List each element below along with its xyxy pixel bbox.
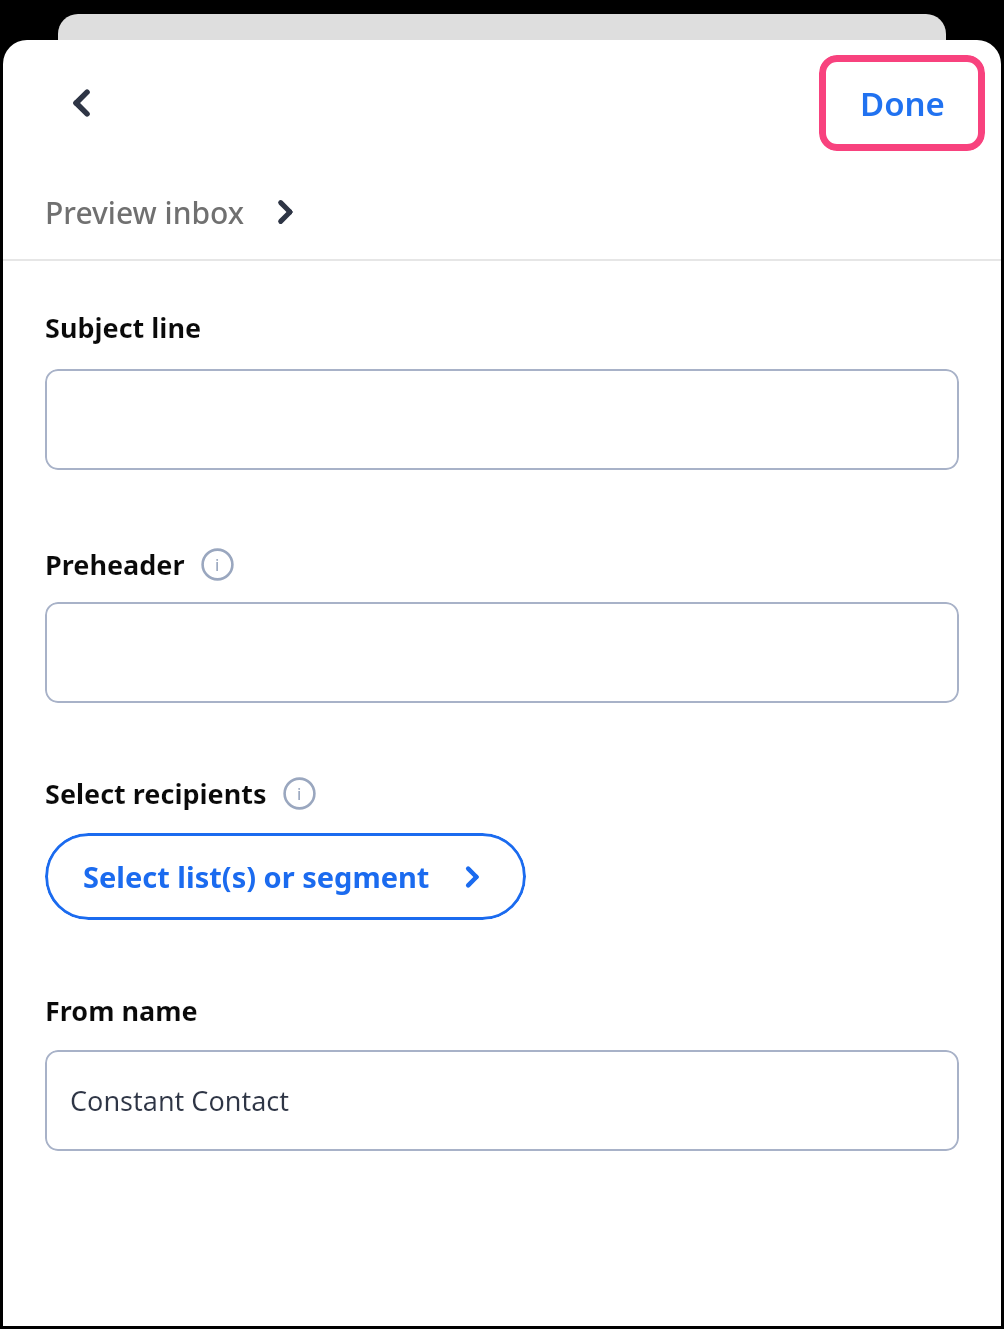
button[interactable] [45,602,959,703]
staticText: Preview inbox [45,192,245,233]
staticText: Preheader [45,546,185,583]
staticText: Select list(s) or segment [83,857,430,896]
staticText: i [215,553,220,576]
staticText: Subject line [45,309,202,346]
other: More information [283,777,316,810]
staticText: Done [860,81,945,126]
staticText: Constant Contact [70,1082,290,1119]
staticText: Select recipients [45,775,267,812]
button[interactable] [45,369,959,470]
button[interactable]: Done [819,55,985,151]
button[interactable]: Constant Contact [45,1050,959,1151]
button[interactable]: Select list(s) or segment [45,833,526,920]
button[interactable]: Back [47,68,117,138]
staticText: i [297,782,302,805]
staticText: From name [45,992,198,1029]
button[interactable]: Preview inbox [3,165,1001,259]
other: More information [201,548,234,581]
